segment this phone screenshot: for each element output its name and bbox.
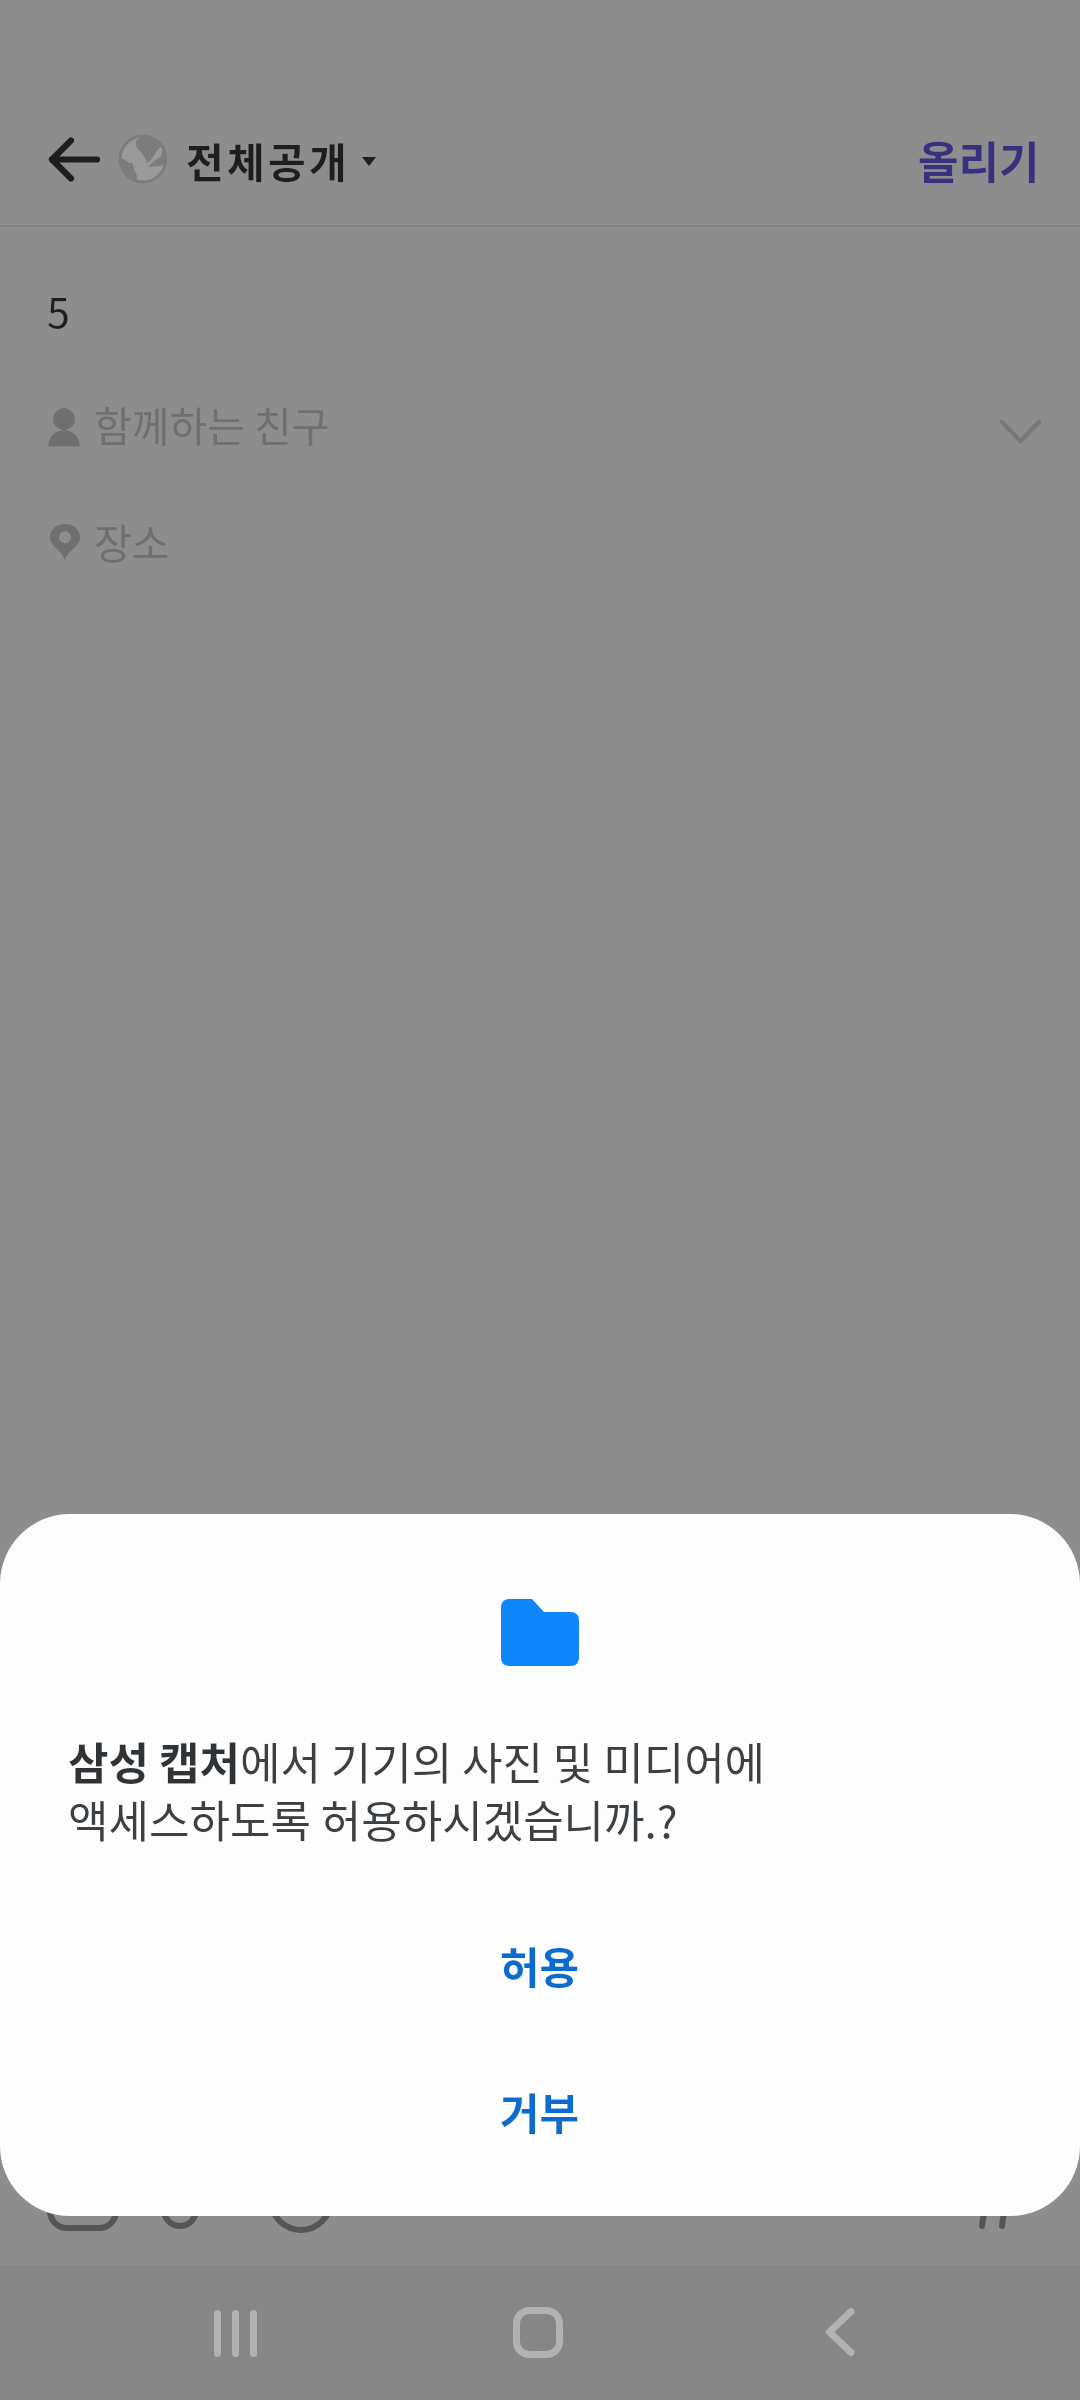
button[interactable]: Photo <box>28 2150 138 2260</box>
button[interactable]: Recent apps <box>180 2265 292 2400</box>
staticText: 삼성 캡처에서 기기의 사진 및 미디어에 액세스하도록 허용하시겠습니까.? <box>68 1729 766 1851</box>
staticText: 5 <box>47 280 70 339</box>
button[interactable]: Home <box>482 2265 594 2400</box>
button[interactable]: Audience: Public <box>116 132 170 186</box>
button[interactable]: 함께하는 친구 <box>0 371 1080 465</box>
staticText: 함께하는 친구 <box>94 394 330 453</box>
button[interactable]: Feeling <box>246 2150 356 2260</box>
button[interactable]: 전체공개 <box>186 128 376 190</box>
button[interactable]: 장소 <box>0 489 1080 583</box>
staticText: 장소 <box>94 511 170 570</box>
button[interactable]: Back <box>26 120 124 198</box>
button[interactable]: 허용 <box>0 1910 1080 2020</box>
button[interactable]: Tag people <box>125 2150 235 2260</box>
button[interactable]: Text style <box>940 2150 1050 2260</box>
button[interactable]: 올리기 <box>904 127 1054 193</box>
staticText: 올리기 <box>918 128 1040 192</box>
staticText: 거부 <box>500 2080 580 2142</box>
staticText: 전체공개 <box>186 130 351 189</box>
button[interactable]: Back <box>784 2265 896 2400</box>
staticText: 허용 <box>500 1934 580 1996</box>
button[interactable]: 거부 <box>0 2056 1080 2166</box>
